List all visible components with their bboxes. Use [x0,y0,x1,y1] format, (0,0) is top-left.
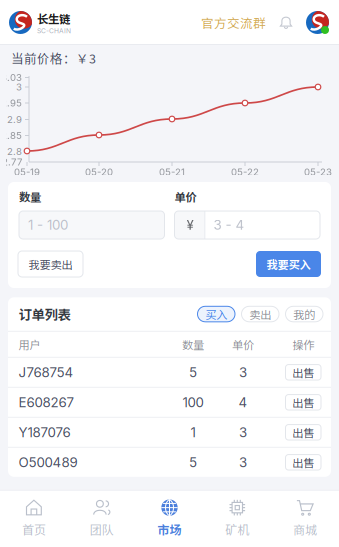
staticText: 05-22 [231,166,259,178]
staticText: 1 - 100 [28,217,68,233]
staticText: 3 - 4 [213,217,244,233]
staticText: 矿机 [225,521,249,538]
staticText: 单价 [174,188,196,205]
staticText: 3 [239,454,247,470]
staticText: 5 [189,454,197,470]
button[interactable]: 卖出 [241,306,279,322]
staticText: 3.03 [1,72,22,83]
button[interactable]: 团队 [68,490,136,547]
button[interactable]: 商城 [271,490,339,547]
staticText: 出售 [292,454,314,470]
staticText: 我的 [293,306,315,322]
staticText: 2.77 [2,156,22,168]
staticText: 操作 [292,336,314,352]
staticText: 官方交流群 [201,13,266,31]
staticText: 3 [239,424,247,440]
staticText: 数量 [182,336,204,352]
button[interactable]: 出售 [285,455,321,470]
staticText: 3 [239,364,247,380]
staticText: 100 [182,394,203,410]
staticText: J768754 [18,364,73,380]
staticText: 05-21 [159,166,185,178]
staticText: 单价 [232,336,254,352]
staticText: 团队 [90,521,114,538]
button[interactable]: 出售 [285,425,321,440]
staticText: 数量 [19,188,41,205]
button[interactable]: 矿机 [203,490,271,547]
staticText: 我要卖出 [28,256,72,272]
staticText: 出售 [292,394,314,410]
staticText: 2.8 [7,146,22,157]
button[interactable]: 市场 [136,490,203,547]
staticText: 05-20 [85,166,113,178]
staticText: 市场 [157,521,181,538]
staticText: 我要买入 [266,256,310,272]
staticText: Y187076 [18,424,70,440]
staticText: 2.85 [1,130,22,141]
button[interactable]: 我要买入 [256,251,321,277]
staticText: ¥ [186,217,193,233]
button[interactable]: Notifications [266,14,306,30]
button[interactable]: 出售 [285,395,321,410]
staticText: 订单列表 [18,304,70,324]
staticText: 买入 [205,306,227,322]
staticText: 商城 [293,521,317,538]
staticText: 05-23 [304,166,332,178]
button[interactable]: 官方交流群 [201,13,266,31]
button[interactable]: 首页 [0,490,68,547]
staticText: 2.9 [7,114,22,125]
staticText: E608267 [18,394,74,410]
button[interactable]: 长生链 [9,10,71,35]
staticText: 4 [238,394,247,410]
staticText: 卖出 [249,306,271,322]
staticText: 2.95 [1,97,22,109]
staticText: 首页 [22,521,46,538]
staticText: 05-19 [14,166,40,178]
staticText: O500489 [18,454,77,470]
staticText: SC-CHAIN [37,27,71,35]
staticText: 长生链 [37,10,70,27]
button[interactable]: 买入 [197,306,235,322]
button[interactable]: Profile [306,11,329,34]
staticText: 出售 [292,364,314,380]
staticText: 3 [16,81,22,93]
staticText: 1 [190,424,195,440]
staticText: 出售 [292,424,314,440]
button[interactable]: 我要卖出 [18,251,83,277]
staticText: 用户 [18,336,40,352]
staticText: 当前价格：￥3 [11,49,96,67]
button[interactable]: 出售 [285,365,321,380]
button[interactable]: 我的 [285,306,323,322]
staticText: 5 [189,364,197,380]
